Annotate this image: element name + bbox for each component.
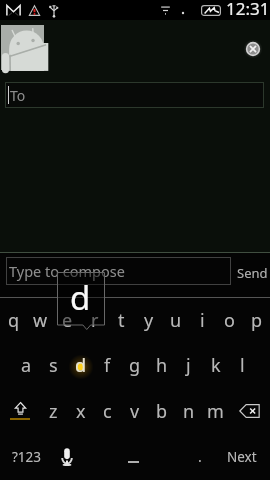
button[interactable]: Close: [243, 39, 263, 59]
staticText: a: [21, 353, 32, 378]
staticText: s: [49, 353, 58, 378]
staticText: i: [200, 308, 205, 333]
staticText: l: [240, 353, 245, 378]
staticText: t: [118, 308, 125, 333]
button[interactable]: Voice input: [52, 434, 82, 479]
staticText: w: [33, 308, 48, 333]
button[interactable]: g: [121, 342, 148, 388]
button[interactable]: d: [67, 342, 94, 388]
staticText: d: [70, 275, 91, 320]
staticText: p: [251, 308, 263, 333]
staticText: m: [207, 399, 224, 424]
staticText: n: [183, 399, 195, 424]
staticText: c: [103, 399, 112, 424]
button[interactable]: ?123: [4, 434, 50, 479]
staticText: b: [156, 399, 168, 424]
button[interactable]: v: [121, 388, 148, 434]
button[interactable]: u: [162, 297, 189, 343]
button[interactable]: w: [27, 297, 54, 343]
staticText: To: [10, 86, 26, 105]
button[interactable]: s: [40, 342, 67, 388]
button[interactable]: r: [81, 297, 108, 343]
button[interactable]: a: [13, 342, 40, 388]
button[interactable]: n: [175, 388, 202, 434]
button[interactable]: .: [186, 434, 214, 479]
button[interactable]: b: [148, 388, 175, 434]
staticText: k: [211, 353, 221, 378]
staticText: q: [8, 308, 20, 333]
staticText: 12:31: [226, 0, 270, 17]
staticText: v: [130, 399, 140, 424]
staticText: ?123: [12, 448, 42, 466]
button[interactable]: t: [108, 297, 135, 343]
staticText: d: [75, 353, 87, 378]
staticText: x: [76, 399, 86, 424]
button[interactable]: Shift: [0, 388, 40, 434]
button[interactable]: i: [189, 297, 216, 343]
staticText: Type to compose: [9, 261, 125, 281]
button[interactable]: l: [229, 342, 256, 388]
staticText: h: [156, 353, 168, 378]
button[interactable]: Next: [218, 434, 266, 479]
button[interactable]: q: [0, 297, 27, 343]
button[interactable]: y: [135, 297, 162, 343]
button[interactable]: o: [216, 297, 243, 343]
staticText: z: [49, 399, 58, 424]
staticText: u: [170, 308, 182, 333]
staticText: y: [144, 308, 154, 333]
staticText: .: [198, 447, 202, 466]
button[interactable]: f: [94, 342, 121, 388]
button[interactable]: Backspace: [229, 388, 270, 434]
staticText: o: [224, 308, 235, 333]
button[interactable]: p: [243, 297, 270, 343]
button[interactable]: m: [202, 388, 229, 434]
staticText: j: [186, 353, 191, 378]
button[interactable]: j: [175, 342, 202, 388]
button[interactable]: Type to compose: [6, 257, 231, 285]
button[interactable]: h: [148, 342, 175, 388]
staticText: f: [104, 353, 111, 378]
button[interactable]: z: [40, 388, 67, 434]
staticText: Next: [227, 448, 257, 466]
button[interactable]: Send: [233, 259, 270, 285]
button[interactable]: Space: [86, 434, 181, 479]
button[interactable]: e: [54, 297, 81, 343]
staticText: r: [91, 308, 99, 333]
button[interactable]: c: [94, 388, 121, 434]
button[interactable]: k: [202, 342, 229, 388]
staticText: g: [129, 353, 141, 378]
staticText: e: [62, 308, 73, 333]
button[interactable]: To: [5, 82, 264, 108]
button[interactable]: x: [67, 388, 94, 434]
staticText: Send: [237, 264, 268, 282]
